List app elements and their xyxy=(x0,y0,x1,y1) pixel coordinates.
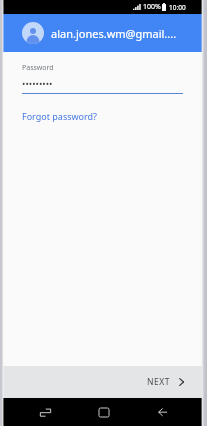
staticText: Password xyxy=(22,63,54,73)
staticText: alan.jones.wm@gmail.... xyxy=(51,26,177,41)
button[interactable]: Recent apps xyxy=(32,399,58,425)
button[interactable]: NEXT xyxy=(133,370,207,394)
button[interactable]: Home xyxy=(91,399,117,425)
button[interactable]: alan.jones.wm@gmail.... xyxy=(0,14,207,52)
staticText: Forgot password? xyxy=(22,110,98,122)
staticText: ••••••••• xyxy=(22,77,53,89)
button[interactable]: Back xyxy=(149,399,175,425)
staticText: 10:00 xyxy=(169,3,186,12)
staticText: 100% xyxy=(143,2,161,12)
button[interactable]: Forgot password? xyxy=(22,110,98,122)
staticText: NEXT xyxy=(147,376,170,388)
